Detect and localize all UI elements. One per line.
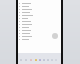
button[interactable]	[18, 5, 61, 8]
button[interactable]	[18, 11, 61, 14]
button[interactable]: Nav item	[33, 53, 38, 64]
button[interactable]: Nav item	[46, 53, 50, 64]
button[interactable]	[18, 29, 61, 32]
button[interactable]: Nav item	[38, 53, 42, 64]
button[interactable]	[18, 14, 61, 17]
button[interactable]	[18, 26, 61, 29]
button[interactable]	[18, 17, 61, 20]
button[interactable]	[18, 20, 61, 23]
button[interactable]: Nav item	[18, 53, 23, 64]
button[interactable]	[18, 23, 61, 26]
button[interactable]	[18, 32, 61, 35]
button[interactable]: Compose	[52, 33, 58, 39]
button[interactable]	[18, 38, 61, 41]
button[interactable]	[18, 35, 61, 38]
button[interactable]: Nav item	[42, 53, 46, 64]
button[interactable]: Nav item	[23, 53, 28, 64]
button[interactable]: Nav item	[54, 53, 58, 64]
button[interactable]	[18, 8, 61, 11]
button[interactable]: Nav item	[50, 53, 54, 64]
button[interactable]	[18, 2, 61, 5]
button[interactable]: Nav item	[28, 53, 33, 64]
